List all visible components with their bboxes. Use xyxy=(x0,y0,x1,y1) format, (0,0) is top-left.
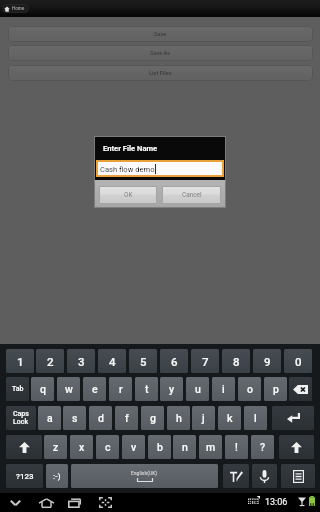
button[interactable]: Shift xyxy=(279,435,314,459)
button[interactable]: 4 xyxy=(98,349,126,373)
button[interactable]: OK xyxy=(100,187,156,203)
button[interactable]: Home xyxy=(2,4,29,13)
button[interactable]: Home xyxy=(36,493,56,512)
button[interactable]: :-) xyxy=(46,464,68,488)
button[interactable]: Cash flow demo xyxy=(98,162,222,175)
button[interactable]: Handwriting xyxy=(223,464,249,488)
staticText: i xyxy=(222,383,225,395)
button[interactable]: Recent apps xyxy=(64,493,84,512)
button[interactable]: q xyxy=(31,377,54,401)
button[interactable]: Voice input xyxy=(252,464,277,488)
button[interactable]: Enter xyxy=(272,406,314,430)
staticText: r xyxy=(119,383,123,395)
staticText: 9 xyxy=(264,355,271,368)
staticText: l xyxy=(254,412,257,424)
button[interactable]: Backspace xyxy=(289,377,312,401)
button[interactable]: ! xyxy=(225,435,248,459)
staticText: x xyxy=(79,441,85,453)
staticText: q xyxy=(40,383,46,395)
button[interactable]: Caps xyxy=(6,406,36,430)
staticText: 4 xyxy=(109,355,116,368)
button[interactable]: o xyxy=(238,377,261,401)
staticText: OK xyxy=(124,191,133,199)
button[interactable]: 5 xyxy=(129,349,157,373)
staticText: 3 xyxy=(78,355,85,368)
button[interactable]: List Files xyxy=(8,65,313,81)
button[interactable]: Tab xyxy=(6,377,29,401)
button[interactable]: u xyxy=(186,377,209,401)
button[interactable]: s xyxy=(63,406,86,430)
button[interactable]: b xyxy=(148,435,171,459)
staticText: 7 xyxy=(202,355,209,368)
button[interactable]: a xyxy=(38,406,61,430)
button[interactable]: h xyxy=(167,406,190,430)
staticText: j xyxy=(202,412,205,424)
staticText: c xyxy=(105,441,111,453)
staticText: e xyxy=(92,383,98,395)
staticText: n xyxy=(182,441,188,453)
button[interactable]: 2 xyxy=(36,349,64,373)
staticText: m xyxy=(206,441,216,453)
staticText: Tab xyxy=(12,385,24,393)
staticText: 1 xyxy=(17,355,24,368)
button[interactable]: Hide keyboard xyxy=(5,493,25,512)
button[interactable]: l xyxy=(244,406,267,430)
button[interactable]: Cancel xyxy=(163,187,220,203)
staticText: o xyxy=(247,383,253,395)
button[interactable]: 1 xyxy=(6,349,34,373)
staticText: h xyxy=(176,412,182,424)
button[interactable]: Screenshot xyxy=(95,493,115,512)
button[interactable]: k xyxy=(218,406,241,430)
staticText: Caps xyxy=(13,410,29,418)
staticText: Enter File Name xyxy=(103,144,158,153)
button[interactable]: ?123 xyxy=(6,464,43,488)
button[interactable]: 6 xyxy=(160,349,188,373)
button[interactable]: r xyxy=(109,377,132,401)
staticText: b xyxy=(157,441,163,453)
button[interactable]: f xyxy=(115,406,138,430)
staticText: t xyxy=(145,383,149,395)
button[interactable]: t xyxy=(135,377,158,401)
button[interactable]: Space xyxy=(71,464,218,488)
staticText: a xyxy=(47,412,53,424)
staticText: z xyxy=(53,441,59,453)
staticText: Save xyxy=(154,31,167,38)
staticText: 2 xyxy=(47,355,54,368)
button[interactable]: j xyxy=(192,406,215,430)
button[interactable]: c xyxy=(96,435,119,459)
button[interactable]: d xyxy=(89,406,112,430)
button[interactable]: 0 xyxy=(284,349,312,373)
staticText: List Files xyxy=(149,70,172,77)
staticText: f xyxy=(125,412,129,424)
button[interactable]: 7 xyxy=(191,349,219,373)
staticText: s xyxy=(72,412,78,424)
staticText: English(UK) xyxy=(131,470,158,476)
button[interactable]: 3 xyxy=(67,349,95,373)
button[interactable]: 8 xyxy=(222,349,250,373)
button[interactable]: Save As xyxy=(8,45,313,61)
button[interactable]: i xyxy=(212,377,235,401)
button[interactable]: e xyxy=(83,377,106,401)
button[interactable]: n xyxy=(173,435,196,459)
staticText: ! xyxy=(235,441,238,453)
button[interactable]: p xyxy=(264,377,287,401)
staticText: Home xyxy=(12,6,25,11)
staticText: Save As xyxy=(150,50,171,57)
staticText: d xyxy=(98,412,104,424)
button[interactable]: m xyxy=(199,435,222,459)
staticText: p xyxy=(273,383,279,395)
button[interactable]: v xyxy=(122,435,145,459)
button[interactable]: Clipboard xyxy=(281,464,315,488)
staticText: 13:06 xyxy=(265,497,288,508)
button[interactable]: 9 xyxy=(253,349,281,373)
button[interactable]: y xyxy=(160,377,183,401)
button[interactable]: ? xyxy=(251,435,274,459)
button[interactable]: Shift xyxy=(6,435,42,459)
button[interactable]: z xyxy=(44,435,67,459)
button[interactable]: w xyxy=(57,377,80,401)
button[interactable]: g xyxy=(141,406,164,430)
button[interactable]: Save xyxy=(8,26,313,42)
staticText: 6 xyxy=(171,355,178,368)
staticText: ?123 xyxy=(16,472,34,481)
button[interactable]: x xyxy=(70,435,93,459)
